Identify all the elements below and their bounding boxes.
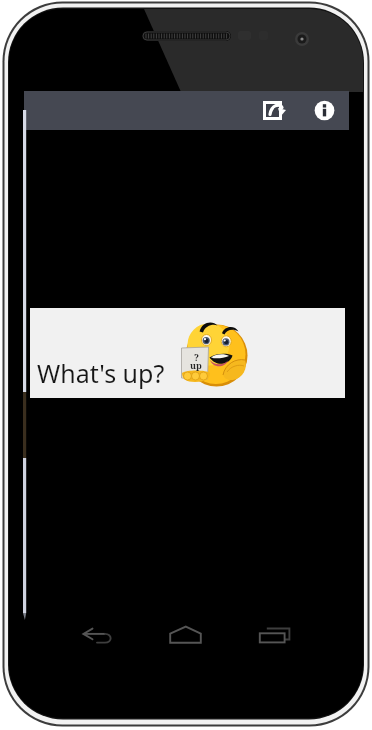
staticText: ? [194,351,199,363]
staticText: up [190,359,202,371]
staticText: What's up? [37,356,165,390]
button[interactable]: Share [249,91,299,130]
button[interactable]: What's up? [30,308,345,398]
button[interactable]: Info [299,91,349,130]
